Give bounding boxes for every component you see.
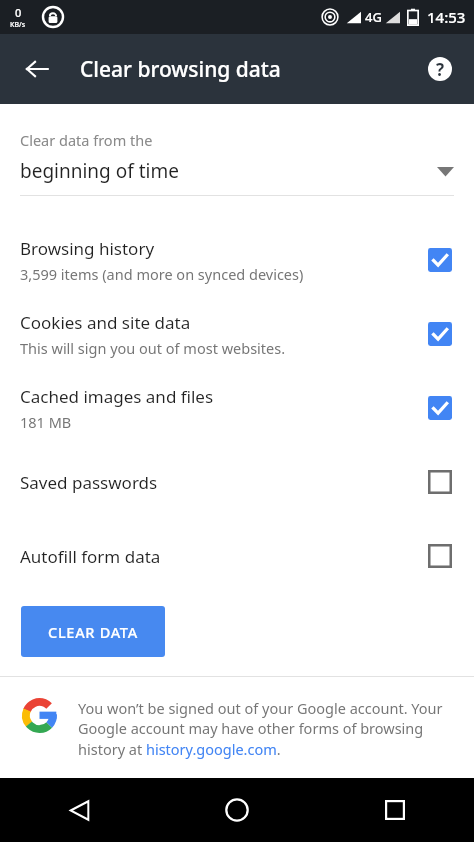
button[interactable]: Browsing history	[0, 223, 474, 297]
staticText: You won’t be signed out of your Google a…	[78, 698, 456, 760]
button[interactable]: Recent apps	[316, 778, 474, 842]
button[interactable]: Back	[0, 778, 158, 842]
button[interactable]: Navigate up	[14, 46, 60, 92]
staticText: Autofill form data	[20, 545, 161, 568]
button[interactable]: CLEAR DATA	[21, 606, 165, 657]
staticText: 0	[15, 5, 22, 20]
staticText: Clear browsing data	[80, 55, 281, 84]
staticText: 14:53	[427, 7, 466, 27]
staticText: Cookies and site data	[20, 311, 191, 334]
staticText: Saved passwords	[20, 471, 158, 494]
button[interactable]: Autofill form data	[0, 519, 474, 593]
button[interactable]: Cached images and files	[0, 371, 474, 445]
staticText: 3,599 items (and more on synced devices)	[20, 264, 304, 284]
button[interactable]: Home	[158, 778, 316, 842]
button[interactable]: Cookies and site data	[0, 297, 474, 371]
button[interactable]: Help	[418, 47, 462, 91]
staticText: Browsing history	[20, 237, 155, 260]
button[interactable]: Saved passwords	[0, 445, 474, 519]
staticText: Cached images and files	[20, 385, 214, 408]
staticText: CLEAR DATA	[48, 622, 138, 642]
staticText: Clear data from the	[20, 130, 153, 150]
button[interactable]: Clear data from the	[0, 104, 474, 196]
staticText: beginning of time	[20, 158, 437, 184]
staticText: 4G	[365, 8, 382, 26]
staticText: This will sign you out of most websites.	[20, 338, 286, 358]
staticText: KB/s	[10, 20, 26, 30]
staticText: 181 MB	[20, 412, 72, 432]
staticText: ?	[436, 58, 445, 81]
